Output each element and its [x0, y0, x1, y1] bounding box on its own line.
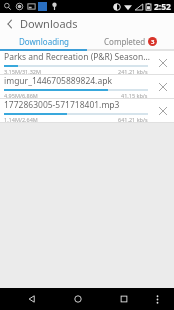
staticText: Downloads	[20, 16, 78, 31]
staticText: Completed	[104, 36, 146, 47]
button[interactable]: Downloading	[0, 34, 87, 49]
staticText: 3	[151, 38, 155, 46]
staticText: 1.14M/2.64M	[4, 116, 38, 122]
staticText: 1772863005-571718401.mp3	[4, 99, 120, 111]
staticText: Parks and Recreation (P&R) Season 7 (S7)…	[4, 51, 152, 63]
button[interactable]: More options	[148, 290, 166, 308]
staticText: 641.21 kb/s	[118, 116, 148, 122]
button[interactable]: Back	[21, 288, 43, 310]
button[interactable]: Parks and Recreation (P&R) Season 7 (S7)…	[0, 51, 174, 75]
button[interactable]: Home	[67, 288, 89, 310]
button[interactable]: Cancel download	[152, 76, 174, 98]
button[interactable]: Cancel download	[152, 100, 174, 122]
staticText: imgur_1446705889824.apk	[4, 75, 112, 87]
staticText: 4.95M/6.86M	[4, 92, 38, 98]
button[interactable]: Recent apps	[113, 288, 135, 310]
button[interactable]: Back	[0, 14, 20, 34]
staticText: 2:52	[154, 1, 171, 13]
button[interactable]: Completed	[87, 34, 174, 49]
staticText: 41.15 kb/s	[121, 92, 148, 98]
button[interactable]: Cancel download	[152, 52, 174, 74]
button[interactable]: imgur_1446705889824.apk	[0, 75, 174, 99]
staticText: 3.15M/31.32M	[4, 68, 41, 74]
button[interactable]: 1772863005-571718401.mp3	[0, 99, 174, 123]
staticText: 241.21 kb/s	[118, 68, 148, 74]
staticText: Downloading	[19, 36, 69, 47]
